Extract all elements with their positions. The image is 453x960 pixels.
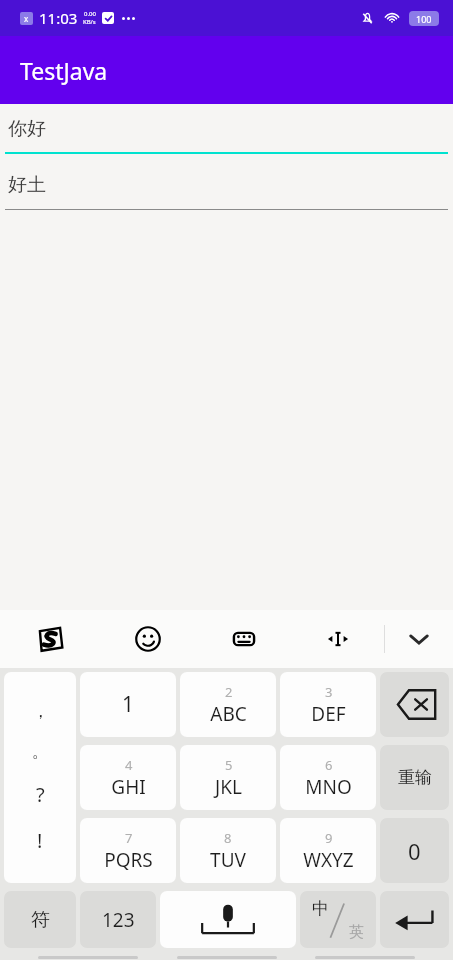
staticText: ! bbox=[37, 827, 43, 854]
staticText: 1 bbox=[122, 690, 135, 719]
staticText: 9 bbox=[325, 829, 333, 847]
staticText: 100 bbox=[416, 13, 432, 25]
staticText: WXYZ bbox=[303, 847, 354, 873]
staticText: ABC bbox=[210, 701, 247, 727]
staticText: 7 bbox=[125, 829, 133, 847]
staticText: x bbox=[24, 13, 29, 24]
staticText: 中 bbox=[312, 898, 329, 919]
button[interactable]: 8 bbox=[180, 818, 276, 883]
staticText: 123 bbox=[102, 907, 135, 933]
button[interactable]: TestJava bbox=[0, 36, 453, 104]
staticText: 好土 bbox=[8, 173, 46, 197]
button[interactable]: 6 bbox=[280, 745, 376, 810]
button[interactable]: 符 bbox=[4, 891, 76, 948]
button[interactable]: 9 bbox=[280, 818, 376, 883]
button[interactable]: Chinese English toggle bbox=[300, 891, 376, 948]
button[interactable]: 1 bbox=[80, 672, 176, 737]
button[interactable]: 4 bbox=[80, 745, 176, 810]
staticText: ， bbox=[32, 701, 49, 722]
button[interactable]: Emoji bbox=[100, 610, 196, 668]
staticText: 3 bbox=[325, 683, 333, 701]
button[interactable]: Backspace bbox=[380, 672, 449, 737]
staticText: 0 bbox=[408, 836, 421, 866]
staticText: 2 bbox=[225, 683, 233, 701]
staticText: 5 bbox=[225, 756, 233, 774]
button[interactable]: Voice input bbox=[160, 891, 296, 948]
staticText: MNO bbox=[305, 774, 352, 800]
button[interactable]: 重输 bbox=[380, 745, 449, 810]
button[interactable]: 0 bbox=[380, 818, 449, 883]
button[interactable]: Hide keyboard bbox=[385, 610, 453, 668]
staticText: ? bbox=[36, 781, 45, 808]
staticText: 11:03 bbox=[39, 8, 78, 28]
button[interactable]: Move cursor bbox=[292, 610, 384, 668]
staticText: 重输 bbox=[398, 767, 432, 788]
staticText: 6 bbox=[325, 756, 333, 774]
button[interactable]: ， bbox=[4, 672, 76, 883]
staticText: DEF bbox=[311, 701, 346, 727]
staticText: 英 bbox=[349, 923, 364, 942]
staticText: 。 bbox=[32, 741, 49, 762]
staticText: GHI bbox=[111, 774, 146, 800]
staticText: 4 bbox=[125, 756, 133, 774]
button[interactable]: 7 bbox=[80, 818, 176, 883]
button[interactable]: 5 bbox=[180, 745, 276, 810]
button[interactable]: Switch keyboard bbox=[196, 610, 292, 668]
button[interactable]: 3 bbox=[280, 672, 376, 737]
button[interactable]: 好土 bbox=[0, 160, 453, 210]
button[interactable]: Enter bbox=[380, 891, 449, 948]
button[interactable]: 2 bbox=[180, 672, 276, 737]
staticText: KB/s bbox=[83, 18, 96, 26]
staticText: 8 bbox=[224, 829, 232, 847]
staticText: PQRS bbox=[104, 847, 153, 873]
button[interactable]: Input method settings bbox=[0, 610, 100, 668]
button[interactable]: 123 bbox=[80, 891, 156, 948]
staticText: JKL bbox=[215, 774, 242, 800]
staticText: TestJava bbox=[20, 55, 108, 86]
staticText: 0.00 bbox=[84, 10, 96, 18]
button[interactable]: 你好 bbox=[0, 104, 453, 154]
staticText: 符 bbox=[31, 908, 50, 932]
staticText: 你好 bbox=[8, 117, 46, 141]
staticText: TUV bbox=[210, 847, 246, 873]
